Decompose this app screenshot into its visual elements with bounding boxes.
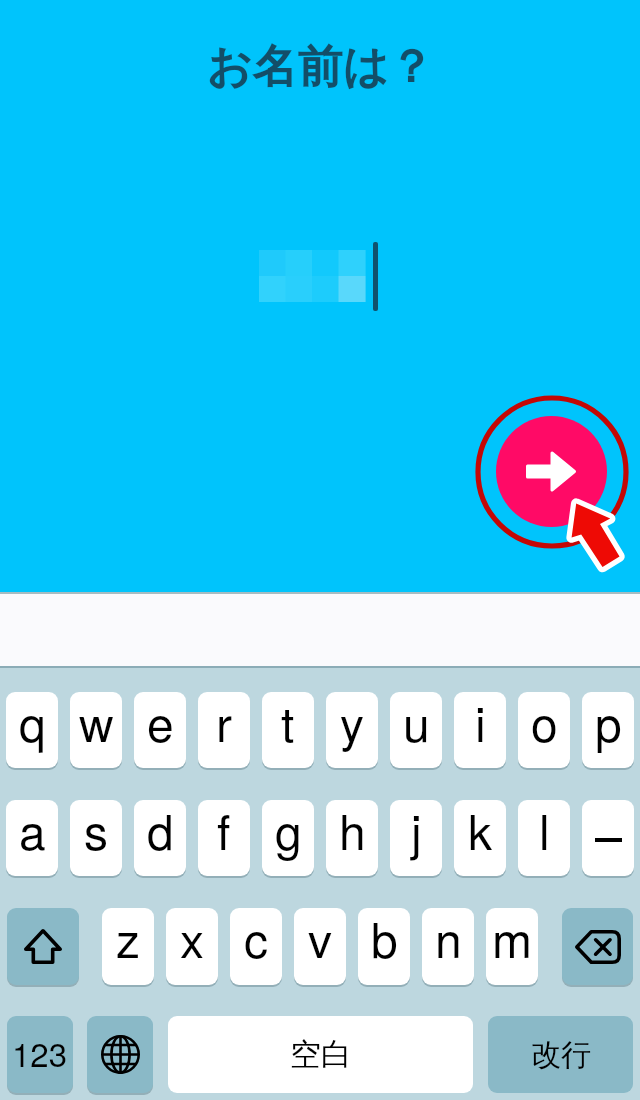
button[interactable]: s <box>70 800 122 876</box>
button[interactable]: u <box>390 692 442 768</box>
button[interactable]: 改行 <box>488 1016 633 1093</box>
staticText: m <box>492 908 532 972</box>
staticText: i <box>475 692 486 756</box>
staticText: v <box>308 908 333 972</box>
staticText: お名前は？ <box>0 39 640 96</box>
button[interactable]: o <box>518 692 570 768</box>
button[interactable]: x <box>166 908 218 985</box>
button[interactable]: Change keyboard <box>87 1016 153 1093</box>
button[interactable]: g <box>262 800 314 876</box>
button[interactable]: h <box>326 800 378 876</box>
staticText: x <box>180 908 205 972</box>
button[interactable]: p <box>582 692 634 768</box>
other: Backspace <box>575 930 621 964</box>
button[interactable]: z <box>102 908 154 985</box>
button[interactable]: c <box>230 908 282 985</box>
staticText: u <box>403 692 430 756</box>
staticText: c <box>244 908 269 972</box>
button[interactable]: m <box>486 908 538 985</box>
button[interactable]: 123 <box>7 1016 73 1093</box>
staticText: e <box>147 692 174 756</box>
button[interactable]: e <box>134 692 186 768</box>
staticText: f <box>217 800 231 864</box>
button[interactable] <box>582 800 634 876</box>
button[interactable]: q <box>6 692 58 768</box>
staticText: p <box>595 692 622 756</box>
button[interactable]: d <box>134 800 186 876</box>
button[interactable]: i <box>454 692 506 768</box>
button[interactable]: l <box>518 800 570 876</box>
staticText: 改行 <box>531 1036 591 1074</box>
staticText: n <box>435 908 462 972</box>
other: Change keyboard <box>101 1035 140 1074</box>
staticText: o <box>531 692 558 756</box>
staticText: g <box>275 800 302 864</box>
button[interactable]: w <box>70 692 122 768</box>
button[interactable]: j <box>390 800 442 876</box>
button[interactable]: v <box>294 908 346 985</box>
staticText: j <box>411 800 422 864</box>
staticText: t <box>281 692 295 756</box>
staticText: s <box>84 800 109 864</box>
staticText: b <box>371 908 398 972</box>
button[interactable]: r <box>198 692 250 768</box>
staticText: h <box>339 800 366 864</box>
button[interactable]: n <box>422 908 474 985</box>
staticText: r <box>216 692 232 756</box>
other: Shift <box>24 929 62 964</box>
staticText: l <box>539 800 550 864</box>
button[interactable]: t <box>262 692 314 768</box>
staticText: z <box>116 908 141 972</box>
staticText: 123 <box>12 1029 68 1076</box>
button[interactable]: k <box>454 800 506 876</box>
button[interactable]: a <box>6 800 58 876</box>
staticText: d <box>147 800 174 864</box>
button[interactable]: Backspace <box>562 908 633 985</box>
staticText: k <box>468 800 493 864</box>
button[interactable]: Shift <box>7 908 79 985</box>
staticText: y <box>340 692 365 756</box>
button[interactable]: b <box>358 908 410 985</box>
button[interactable]: 空白 <box>168 1016 473 1093</box>
button[interactable]: y <box>326 692 378 768</box>
staticText: q <box>19 692 46 756</box>
staticText: a <box>19 800 46 864</box>
staticText: w <box>79 692 114 756</box>
button[interactable]: Next <box>496 416 607 527</box>
staticText: 空白 <box>290 1035 352 1074</box>
button[interactable]: f <box>198 800 250 876</box>
